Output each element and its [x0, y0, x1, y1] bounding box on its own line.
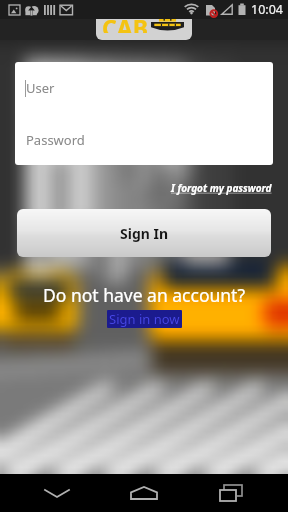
staticText: Sign In: [120, 224, 169, 243]
button[interactable]: Recent apps: [201, 474, 261, 512]
staticText: Sign in now: [109, 310, 180, 328]
staticText: User: [26, 79, 55, 97]
button[interactable]: Password: [15, 114, 273, 165]
button[interactable]: Home: [114, 474, 174, 512]
staticText: 10:04: [251, 1, 283, 18]
staticText: Password: [26, 131, 85, 149]
button[interactable]: User: [15, 62, 273, 114]
button[interactable]: Sign In: [17, 209, 271, 257]
staticText: Do not have an account?: [0, 283, 288, 307]
button[interactable]: Back: [27, 474, 87, 512]
button[interactable]: Sign in now: [107, 310, 182, 328]
staticText: CAB: [102, 19, 148, 33]
button[interactable]: I forgot my password: [171, 181, 272, 195]
